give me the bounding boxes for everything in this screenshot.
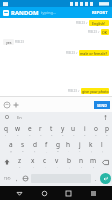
button[interactable]: En [17, 115, 22, 120]
staticText: # [22, 149, 24, 152]
staticText: ( [91, 149, 92, 152]
button[interactable]: yes [3, 39, 109, 45]
staticText: s [21, 140, 25, 149]
staticText: FEB 23 ✓ [88, 30, 100, 34]
button[interactable]: !1© [1, 170, 13, 186]
staticText: yes [6, 40, 12, 45]
button[interactable]: Voice [101, 113, 109, 121]
staticText: ) [102, 149, 103, 152]
staticText: k [89, 140, 93, 149]
button[interactable]: q [0, 122, 12, 138]
staticText: 7 [73, 133, 75, 136]
button[interactable]: Backspace [99, 154, 112, 170]
staticText: RANDOM [11, 9, 39, 17]
button[interactable]: f [41, 138, 52, 154]
button[interactable]: h [63, 138, 74, 154]
button[interactable]: c [39, 154, 51, 170]
button[interactable]: SEND [94, 101, 110, 109]
button[interactable]: . [92, 170, 100, 186]
staticText: y [61, 124, 65, 133]
staticText: !1© [4, 176, 11, 181]
staticText: 8 [84, 133, 86, 136]
button[interactable]: o [90, 122, 101, 138]
button[interactable]: p [101, 122, 112, 138]
staticText: FEB 23 [15, 40, 24, 44]
staticText: male or female? [80, 51, 108, 56]
button[interactable]: REPORT [91, 9, 109, 16]
button[interactable]: w [12, 122, 24, 138]
staticText: 6 [62, 133, 64, 136]
staticText: * [19, 165, 21, 168]
staticText: ' [45, 165, 46, 168]
button[interactable]: m [87, 154, 99, 170]
staticText: FEB 23 ✓ [66, 51, 78, 55]
button[interactable]: Switch keyboard [87, 187, 99, 199]
button[interactable]: FEB 23 ✓ [3, 20, 109, 26]
button[interactable]: x [26, 154, 39, 170]
button[interactable]: Home [38, 187, 50, 199]
button[interactable]: FEB 23 ✓ [3, 88, 109, 94]
button[interactable]: e [24, 122, 35, 138]
staticText: ! [81, 165, 82, 168]
staticText: " [33, 165, 34, 168]
button[interactable]: Attach [11, 100, 20, 109]
staticText: ? [93, 165, 95, 168]
button[interactable]: Enter [100, 173, 111, 184]
button[interactable]: , [13, 170, 21, 186]
button[interactable]: FEB 23 ✓ [3, 29, 109, 35]
button[interactable]: Language [21, 170, 30, 186]
button[interactable]: Emoji [2, 100, 11, 109]
button[interactable]: a [5, 138, 17, 154]
button[interactable]: r [35, 122, 46, 138]
button[interactable]: g [52, 138, 63, 154]
button[interactable]: t [46, 122, 57, 138]
staticText: i [84, 124, 86, 133]
staticText: t [50, 124, 53, 133]
staticText: - [68, 149, 69, 152]
staticText: , [16, 175, 18, 182]
staticText: & [57, 149, 59, 152]
staticText: p [105, 124, 109, 133]
staticText: @ [10, 149, 13, 152]
staticText: 4 [40, 133, 42, 136]
staticText: x [31, 156, 35, 165]
button[interactable]: j [74, 138, 85, 154]
staticText: 9 [95, 133, 97, 136]
staticText: j [79, 140, 81, 149]
button[interactable]: Recents [62, 187, 74, 199]
button[interactable]: i [79, 122, 90, 138]
button[interactable]: l [96, 138, 107, 154]
staticText: q [4, 124, 8, 133]
button[interactable]: n [75, 154, 87, 170]
staticText: 5 [51, 133, 53, 136]
staticText: ; [69, 165, 70, 168]
staticText: f [45, 140, 48, 149]
button[interactable]: b [63, 154, 75, 170]
staticText: 2 [17, 133, 19, 136]
button[interactable]: Settings [3, 113, 11, 121]
staticText: g [56, 140, 60, 149]
button[interactable]: y [57, 122, 68, 138]
staticText: b [67, 156, 71, 165]
staticText: En [17, 115, 22, 120]
staticText: h [66, 140, 71, 149]
button[interactable]: Shift [0, 154, 13, 170]
button[interactable]: u [68, 122, 79, 138]
button[interactable]: Back [13, 187, 25, 199]
staticText: a [9, 140, 13, 149]
button[interactable]: v [51, 154, 63, 170]
staticText: typing... [41, 10, 57, 15]
button[interactable]: k [85, 138, 96, 154]
staticText: r [39, 124, 42, 133]
button[interactable]: z [13, 154, 26, 170]
button[interactable]: s [17, 138, 29, 154]
button[interactable]: d [29, 138, 41, 154]
staticText: SEND [97, 103, 108, 108]
button[interactable]: Avatar [3, 10, 9, 16]
button[interactable]: FEB 23 ✓ [3, 50, 109, 56]
staticText: m [90, 156, 97, 165]
staticText: v [55, 156, 59, 165]
